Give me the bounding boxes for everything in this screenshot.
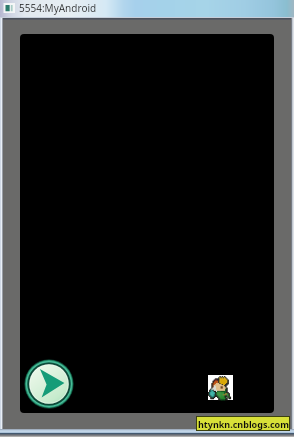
- staticText: 5554:MyAndroid: [19, 1, 97, 15]
- staticText: htynkn.cnblogs.com: [198, 418, 289, 430]
- button[interactable]: Character: [208, 375, 233, 400]
- button[interactable]: Play: [24, 359, 74, 409]
- button[interactable]: htynkn.cnblogs.com: [196, 416, 290, 431]
